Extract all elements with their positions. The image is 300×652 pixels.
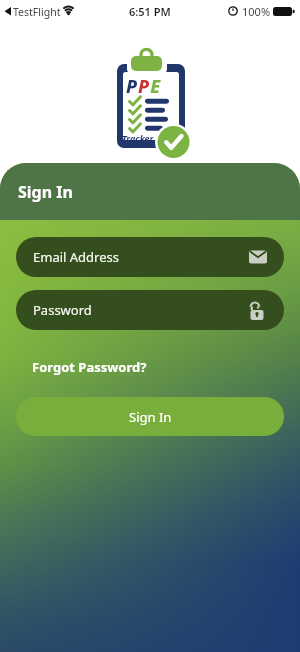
staticText: TestFlight [13,5,61,19]
button[interactable]: Email Address [16,237,284,277]
staticText: 100% [242,4,271,19]
staticText: PPE [126,74,162,99]
staticText: 6:51 PM [129,4,171,19]
button[interactable]: Sign In [16,397,284,436]
staticText: Sign In [18,181,73,203]
button[interactable]: Forgot Password? [32,358,147,376]
button[interactable]: Password [16,290,284,330]
staticText: Password [33,301,92,319]
staticText: Tracker [122,132,154,144]
staticText: Sign In [129,408,172,426]
staticText: Email Address [33,248,119,266]
